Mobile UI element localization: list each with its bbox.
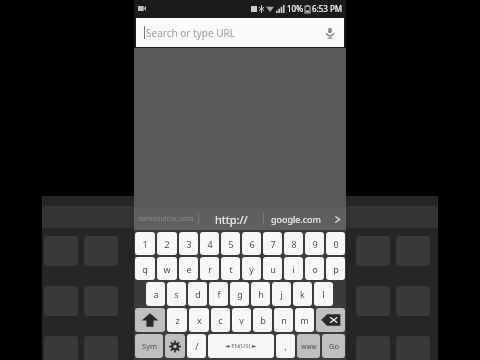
staticText: f	[217, 288, 221, 300]
button[interactable]: Keyboard settings	[165, 334, 185, 358]
staticText: b	[260, 314, 266, 326]
button[interactable]: google.com	[264, 208, 328, 230]
button[interactable]: n	[274, 308, 293, 332]
button[interactable]: i	[284, 257, 303, 280]
staticText: e	[186, 263, 192, 275]
button[interactable]: 2	[157, 232, 177, 255]
button[interactable]: www	[297, 334, 320, 358]
button[interactable]: Go	[322, 334, 345, 358]
staticText: x	[197, 314, 202, 326]
button[interactable]: ◄ EN(US) ►	[208, 334, 274, 358]
staticText: a	[153, 288, 159, 300]
staticText: ,	[284, 340, 287, 352]
button[interactable]: l	[314, 282, 333, 306]
staticText: r	[208, 263, 212, 275]
button[interactable]: 0	[326, 232, 345, 255]
staticText: /	[195, 340, 199, 352]
staticText: 1	[142, 238, 148, 250]
staticText: c	[218, 314, 223, 326]
staticText: m	[300, 314, 309, 326]
button[interactable]: 9	[305, 232, 324, 255]
button[interactable]: y	[242, 257, 261, 280]
staticText: 2	[164, 238, 170, 250]
button[interactable]: u	[263, 257, 282, 280]
button[interactable]: Search or type URL	[136, 18, 344, 47]
button[interactable]: b	[253, 308, 272, 332]
button[interactable]: v	[232, 308, 251, 332]
staticText: 0	[333, 238, 339, 250]
button[interactable]: a	[146, 282, 165, 306]
staticText: v	[239, 314, 244, 326]
staticText: 7	[270, 238, 276, 250]
staticText: i	[292, 263, 295, 275]
staticText: k	[300, 288, 305, 300]
staticText: darksoulcoc.com	[138, 214, 194, 224]
staticText: t	[229, 263, 233, 275]
button[interactable]: g	[230, 282, 249, 306]
button[interactable]: t	[221, 257, 240, 280]
staticText: n	[281, 314, 287, 326]
staticText: d	[195, 288, 201, 300]
staticText: o	[312, 263, 318, 275]
button[interactable]: e	[179, 257, 198, 280]
staticText: 10%	[287, 3, 303, 14]
staticText: Sym	[142, 341, 157, 351]
staticText: w	[163, 263, 171, 275]
staticText: s	[174, 288, 179, 300]
staticText: 8	[291, 238, 297, 250]
staticText: u	[270, 263, 276, 275]
button[interactable]: Shift	[135, 308, 165, 332]
button[interactable]: f	[209, 282, 228, 306]
button[interactable]: More suggestions	[328, 208, 346, 230]
staticText: q	[142, 263, 148, 275]
button[interactable]: z	[167, 308, 187, 332]
staticText: ◄ EN(US) ►	[225, 342, 257, 350]
button[interactable]: x	[189, 308, 209, 332]
staticText: Go	[329, 341, 339, 351]
staticText: http://	[215, 212, 248, 227]
button[interactable]: q	[135, 257, 155, 280]
button[interactable]: d	[188, 282, 207, 306]
staticText: 4	[207, 238, 213, 250]
staticText: z	[175, 314, 180, 326]
staticText: google.com	[271, 213, 321, 225]
button[interactable]: o	[305, 257, 324, 280]
button[interactable]: darksoulcoc.com	[134, 208, 198, 230]
staticText: 5	[228, 238, 234, 250]
button[interactable]: Voice search	[322, 25, 338, 41]
button[interactable]: 4	[200, 232, 219, 255]
button[interactable]: c	[211, 308, 230, 332]
button[interactable]: h	[251, 282, 270, 306]
staticText: g	[237, 288, 243, 300]
button[interactable]: /	[187, 334, 206, 358]
button[interactable]: 6	[242, 232, 261, 255]
button[interactable]: s	[167, 282, 186, 306]
button[interactable]: j	[272, 282, 291, 306]
button[interactable]: Backspace	[316, 308, 345, 332]
staticText: 9	[312, 238, 318, 250]
staticText: l	[322, 288, 325, 300]
staticText: www	[301, 342, 317, 351]
button[interactable]: k	[293, 282, 312, 306]
button[interactable]: p	[326, 257, 345, 280]
staticText: 6	[249, 238, 255, 250]
staticText: Search or type URL	[146, 26, 235, 40]
button[interactable]: 1	[135, 232, 155, 255]
staticText: 6:53 PM	[312, 3, 343, 14]
button[interactable]: 8	[284, 232, 303, 255]
button[interactable]: 5	[221, 232, 240, 255]
button[interactable]: 7	[263, 232, 282, 255]
button[interactable]: m	[295, 308, 314, 332]
button[interactable]: 3	[179, 232, 198, 255]
staticText: j	[280, 288, 283, 300]
staticText: y	[249, 263, 254, 275]
staticText: p	[333, 263, 339, 275]
staticText: h	[258, 288, 264, 300]
button[interactable]: w	[157, 257, 177, 280]
button[interactable]: Sym	[135, 334, 163, 358]
button[interactable]: ,	[276, 334, 295, 358]
staticText: 3	[186, 238, 192, 250]
button[interactable]: r	[200, 257, 219, 280]
button[interactable]: http://	[199, 208, 263, 230]
